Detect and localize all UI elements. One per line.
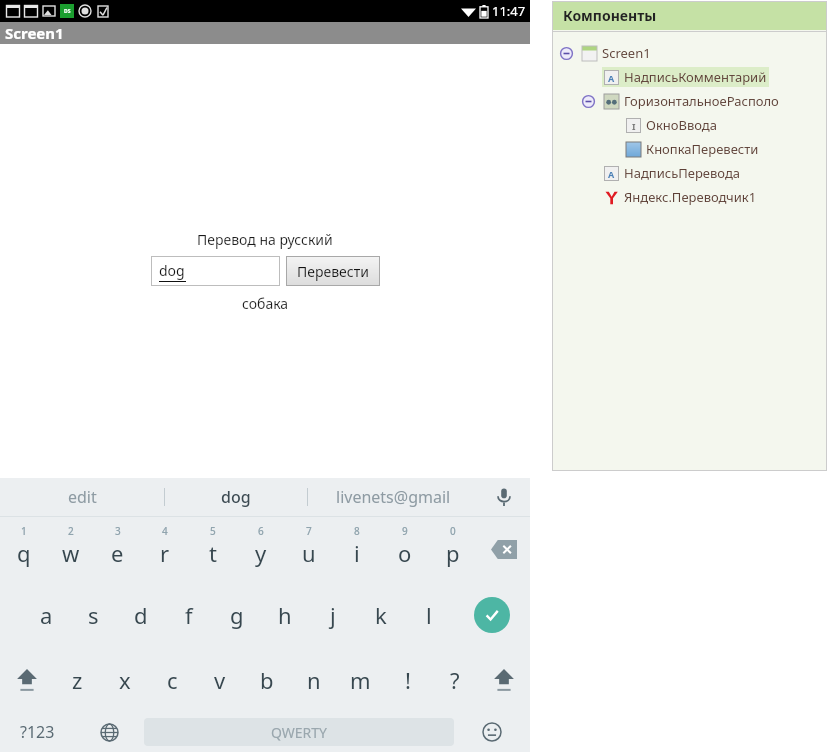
button[interactable]: Backspace xyxy=(477,517,530,582)
staticText: q xyxy=(17,538,31,568)
staticText: 6 xyxy=(258,524,264,538)
staticText: n xyxy=(307,665,321,695)
button[interactable]: I xyxy=(552,113,827,137)
staticText: a xyxy=(40,600,53,630)
button[interactable]: 2 xyxy=(47,517,94,582)
button[interactable]: a xyxy=(23,582,70,647)
button[interactable]: z xyxy=(53,647,101,712)
staticText: 2 xyxy=(68,524,74,538)
staticText: y xyxy=(255,538,267,568)
button[interactable]: Emoji xyxy=(454,712,530,752)
staticText: e xyxy=(111,538,124,568)
button[interactable]: f xyxy=(165,582,213,647)
button[interactable]: n xyxy=(290,647,337,712)
staticText: r xyxy=(160,538,170,568)
staticText: v xyxy=(214,665,226,695)
staticText: Перевести xyxy=(297,262,369,281)
staticText: 4 xyxy=(162,524,168,538)
staticText: НадписьПеревода xyxy=(624,164,741,182)
staticText: I xyxy=(632,120,636,132)
staticText: j xyxy=(330,600,336,630)
button[interactable]: j xyxy=(309,582,357,647)
staticText: DS xyxy=(64,8,71,15)
staticText: ГоризонтальноеРасполо xyxy=(624,92,779,110)
button[interactable]: Voice input xyxy=(478,478,530,516)
staticText: m xyxy=(350,665,371,695)
button[interactable]: Яндекс.Переводчик1 xyxy=(552,185,827,209)
staticText: i xyxy=(354,538,360,568)
staticText: A xyxy=(608,72,615,84)
button[interactable]: c xyxy=(149,647,196,712)
button[interactable]: ?123 xyxy=(0,712,75,752)
button[interactable]: Enter xyxy=(453,582,530,647)
button[interactable]: v xyxy=(196,647,243,712)
button[interactable]: ? xyxy=(431,647,478,712)
button[interactable]: b xyxy=(243,647,290,712)
staticText: Яндекс.Переводчик1 xyxy=(624,188,757,206)
button[interactable]: Change language xyxy=(75,712,144,752)
staticText: A xyxy=(608,168,615,180)
button[interactable]: 8 xyxy=(333,517,381,582)
staticText: собака xyxy=(242,294,289,313)
button[interactable]: Shift xyxy=(478,647,530,712)
button[interactable]: d xyxy=(117,582,165,647)
button[interactable]: h xyxy=(261,582,309,647)
button[interactable]: 6 xyxy=(237,517,285,582)
staticText: g xyxy=(230,600,244,630)
button[interactable]: Screen1 xyxy=(552,41,827,65)
staticText: s xyxy=(88,600,99,630)
button[interactable]: 7 xyxy=(285,517,333,582)
button[interactable]: Shift xyxy=(0,647,53,712)
button[interactable]: 5 xyxy=(189,517,237,582)
button[interactable]: КнопкаПеревести xyxy=(552,137,827,161)
button[interactable]: 0 xyxy=(429,517,477,582)
button[interactable]: k xyxy=(357,582,405,647)
button[interactable]: m xyxy=(337,647,384,712)
button[interactable]: 1 xyxy=(0,517,47,582)
staticText: Screen1 xyxy=(5,23,64,43)
staticText: w xyxy=(62,538,80,568)
staticText: u xyxy=(302,538,316,568)
button[interactable]: edit xyxy=(0,478,164,516)
staticText: 3 xyxy=(115,524,121,538)
staticText: o xyxy=(398,538,412,568)
button[interactable]: A xyxy=(552,65,827,89)
staticText: d xyxy=(134,600,148,630)
button[interactable]: dog xyxy=(165,478,307,516)
button[interactable]: ГоризонтальноеРасполо xyxy=(552,89,827,113)
button[interactable]: x xyxy=(101,647,149,712)
button[interactable]: 4 xyxy=(141,517,189,582)
staticText: 0 xyxy=(450,524,456,538)
staticText: Screen1 xyxy=(602,44,651,62)
staticText: 7 xyxy=(306,524,312,538)
staticText: 9 xyxy=(402,524,408,538)
button[interactable]: livenets@gmail xyxy=(308,478,478,516)
staticText: x xyxy=(119,665,131,695)
staticText: Перевод на русский xyxy=(197,230,333,249)
button[interactable]: ! xyxy=(384,647,431,712)
button[interactable]: l xyxy=(405,582,453,647)
staticText: edit xyxy=(68,486,97,508)
button[interactable]: g xyxy=(213,582,261,647)
staticText: dog xyxy=(221,486,251,508)
staticText: ! xyxy=(405,665,411,695)
staticText: dog xyxy=(159,261,185,280)
staticText: ?123 xyxy=(20,721,55,743)
button[interactable]: s xyxy=(70,582,117,647)
button[interactable]: dog xyxy=(151,256,280,286)
staticText: 8 xyxy=(354,524,360,538)
button[interactable]: 9 xyxy=(381,517,429,582)
button[interactable]: A xyxy=(552,161,827,185)
staticText: ? xyxy=(450,665,460,695)
staticText: 11:47 xyxy=(492,2,526,20)
staticText: z xyxy=(72,665,83,695)
staticText: ОкноВвода xyxy=(646,116,717,134)
button[interactable]: Перевести xyxy=(286,256,380,286)
staticText: c xyxy=(167,665,178,695)
staticText: НадписьКомментарий xyxy=(624,68,767,86)
staticText: b xyxy=(260,665,274,695)
button[interactable]: 3 xyxy=(94,517,141,582)
staticText: 5 xyxy=(210,524,216,538)
button[interactable]: QWERTY xyxy=(144,718,454,746)
staticText: t xyxy=(209,538,217,568)
